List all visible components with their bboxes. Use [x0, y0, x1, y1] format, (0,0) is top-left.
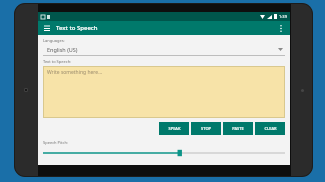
button[interactable]: More options [276, 23, 286, 33]
staticText: Text to Speech: [43, 59, 72, 64]
button[interactable]: Speech pitch slider [43, 149, 285, 157]
staticText: SPEAK [168, 126, 181, 131]
button[interactable]: STOP [191, 122, 221, 135]
staticText: English (US) [47, 46, 278, 53]
button[interactable]: Open navigation drawer [42, 23, 52, 33]
button[interactable]: CLEAR [255, 122, 285, 135]
other: Expand language list [278, 48, 283, 51]
button[interactable]: English (US) [43, 46, 285, 55]
staticText: Write something here... [47, 69, 103, 76]
staticText: PASTE [232, 126, 244, 131]
staticText: Languages: [43, 38, 65, 43]
staticText: Speech Pitch: [43, 140, 68, 145]
staticText: 1:39 [279, 14, 287, 19]
button[interactable]: PASTE [223, 122, 253, 135]
button[interactable]: Write something here... [43, 66, 285, 118]
staticText: STOP [201, 126, 211, 131]
staticText: CLEAR [264, 126, 277, 131]
button[interactable]: SPEAK [159, 122, 189, 135]
staticText: Text to Speech [56, 24, 98, 32]
